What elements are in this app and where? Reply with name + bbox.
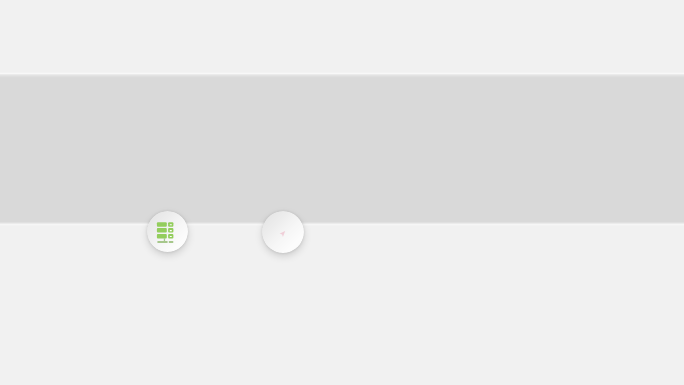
button[interactable]: Send [262, 211, 304, 253]
button[interactable]: Servers [147, 211, 188, 252]
